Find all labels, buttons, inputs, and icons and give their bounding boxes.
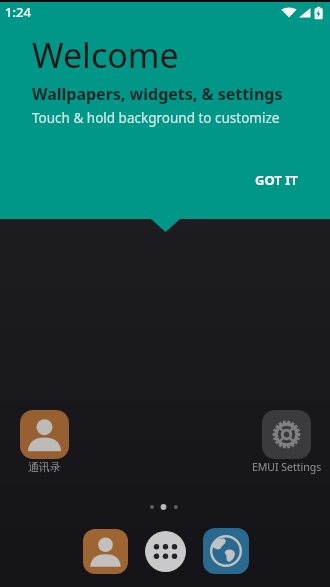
button[interactable] — [20, 410, 69, 459]
button[interactable] — [203, 528, 249, 574]
staticText: EMUI Settings — [252, 460, 322, 474]
staticText: Welcome — [32, 32, 179, 78]
staticText: 通讯录 — [28, 460, 61, 474]
button[interactable] — [262, 410, 311, 459]
staticText: Touch & hold background to customize — [32, 109, 280, 127]
button[interactable] — [145, 531, 186, 572]
staticText: 1:24 — [5, 3, 31, 21]
staticText: Wallpapers, widgets, & settings — [32, 83, 283, 105]
button[interactable]: GOT IT — [241, 163, 311, 197]
button[interactable] — [83, 529, 128, 574]
staticText: GOT IT — [255, 171, 298, 189]
